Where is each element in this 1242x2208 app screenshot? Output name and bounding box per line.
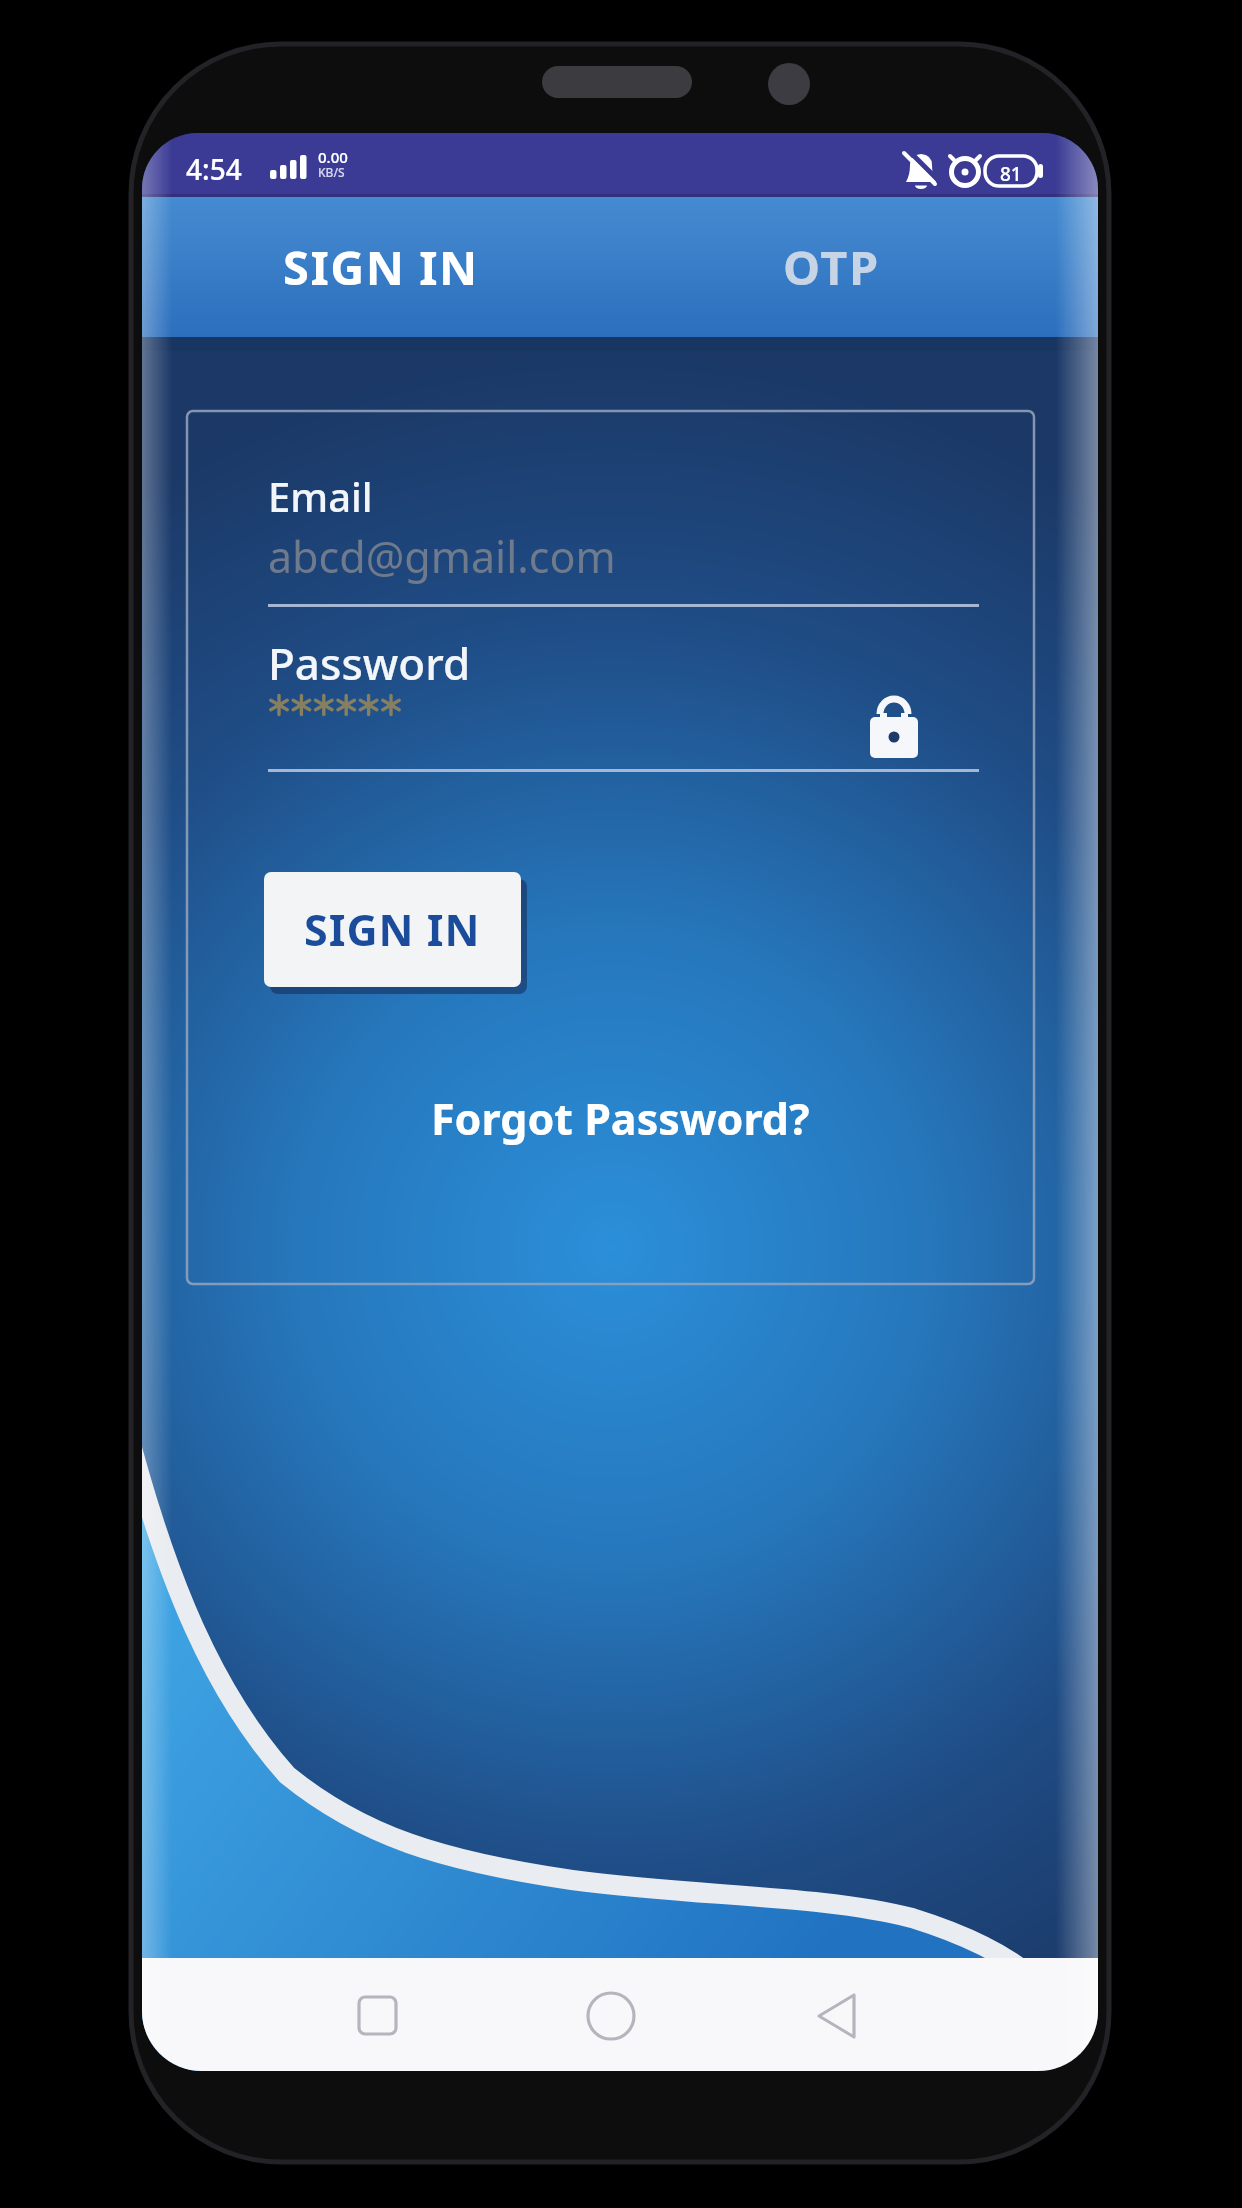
- button[interactable]: OTP: [620, 197, 1098, 337]
- button[interactable]: Forgot Password?: [431, 1089, 810, 1148]
- button[interactable]: [268, 678, 979, 748]
- staticText: Forgot Password?: [431, 1089, 810, 1148]
- button[interactable]: [142, 1958, 460, 2071]
- staticText: SIGN IN: [304, 900, 481, 959]
- staticText: 81: [1000, 161, 1022, 187]
- button[interactable]: [460, 1958, 778, 2071]
- staticText: KB/S: [318, 164, 345, 180]
- staticText: Email: [268, 469, 373, 523]
- staticText: OTP: [783, 235, 880, 299]
- button[interactable]: [778, 1958, 1098, 2071]
- button[interactable]: SIGN IN: [142, 197, 620, 337]
- button[interactable]: SIGN IN: [264, 872, 521, 987]
- staticText: abcd@gmail.com: [268, 527, 616, 586]
- staticText: 4:54: [186, 150, 242, 188]
- staticText: Password: [268, 633, 471, 693]
- staticText: SIGN IN: [283, 235, 479, 299]
- staticText: 0.00: [318, 147, 348, 167]
- button[interactable]: abcd@gmail.com: [268, 523, 979, 589]
